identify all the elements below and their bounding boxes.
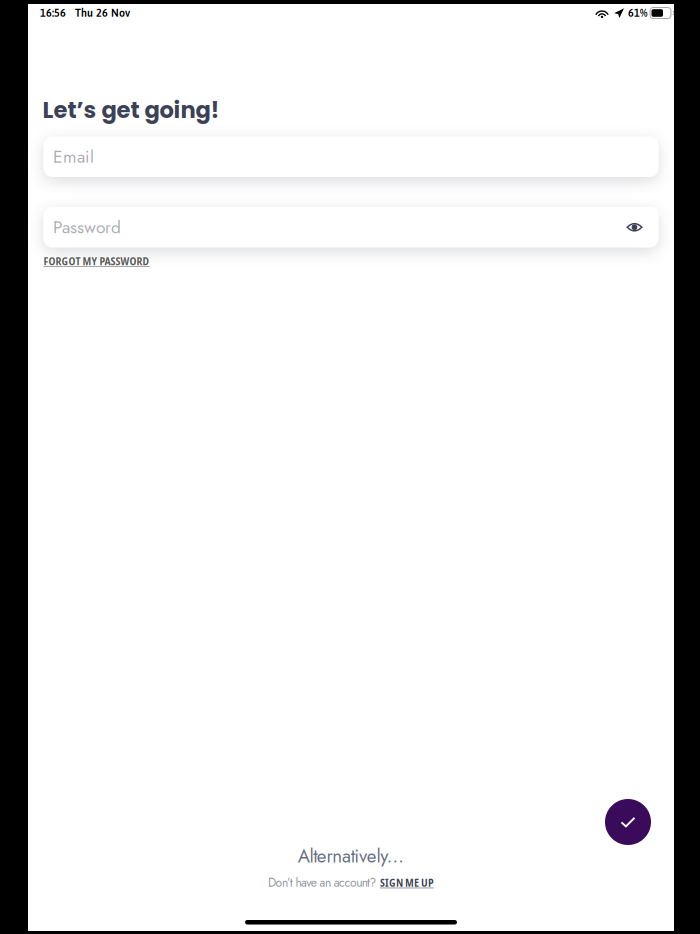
button[interactable]: FORGOT MY PASSWORD: [43, 254, 149, 268]
staticText: FORGOT MY PASSWORD: [43, 254, 149, 268]
staticText: 16:56: [40, 7, 66, 19]
staticText: Alternatively...: [298, 842, 404, 869]
button[interactable]: Show password: [618, 211, 650, 243]
staticText: SIGN ME UP: [380, 875, 434, 890]
staticText: Thu 26 Nov: [75, 7, 130, 19]
staticText: Password: [53, 215, 121, 240]
staticText: Don’t have an account?: [268, 874, 380, 891]
button[interactable]: Sign in: [605, 799, 651, 845]
staticText: Let’s get going!: [42, 94, 219, 126]
staticText: 61%: [628, 7, 647, 19]
button[interactable]: SIGN ME UP: [380, 875, 434, 890]
staticText: Email: [53, 144, 94, 169]
